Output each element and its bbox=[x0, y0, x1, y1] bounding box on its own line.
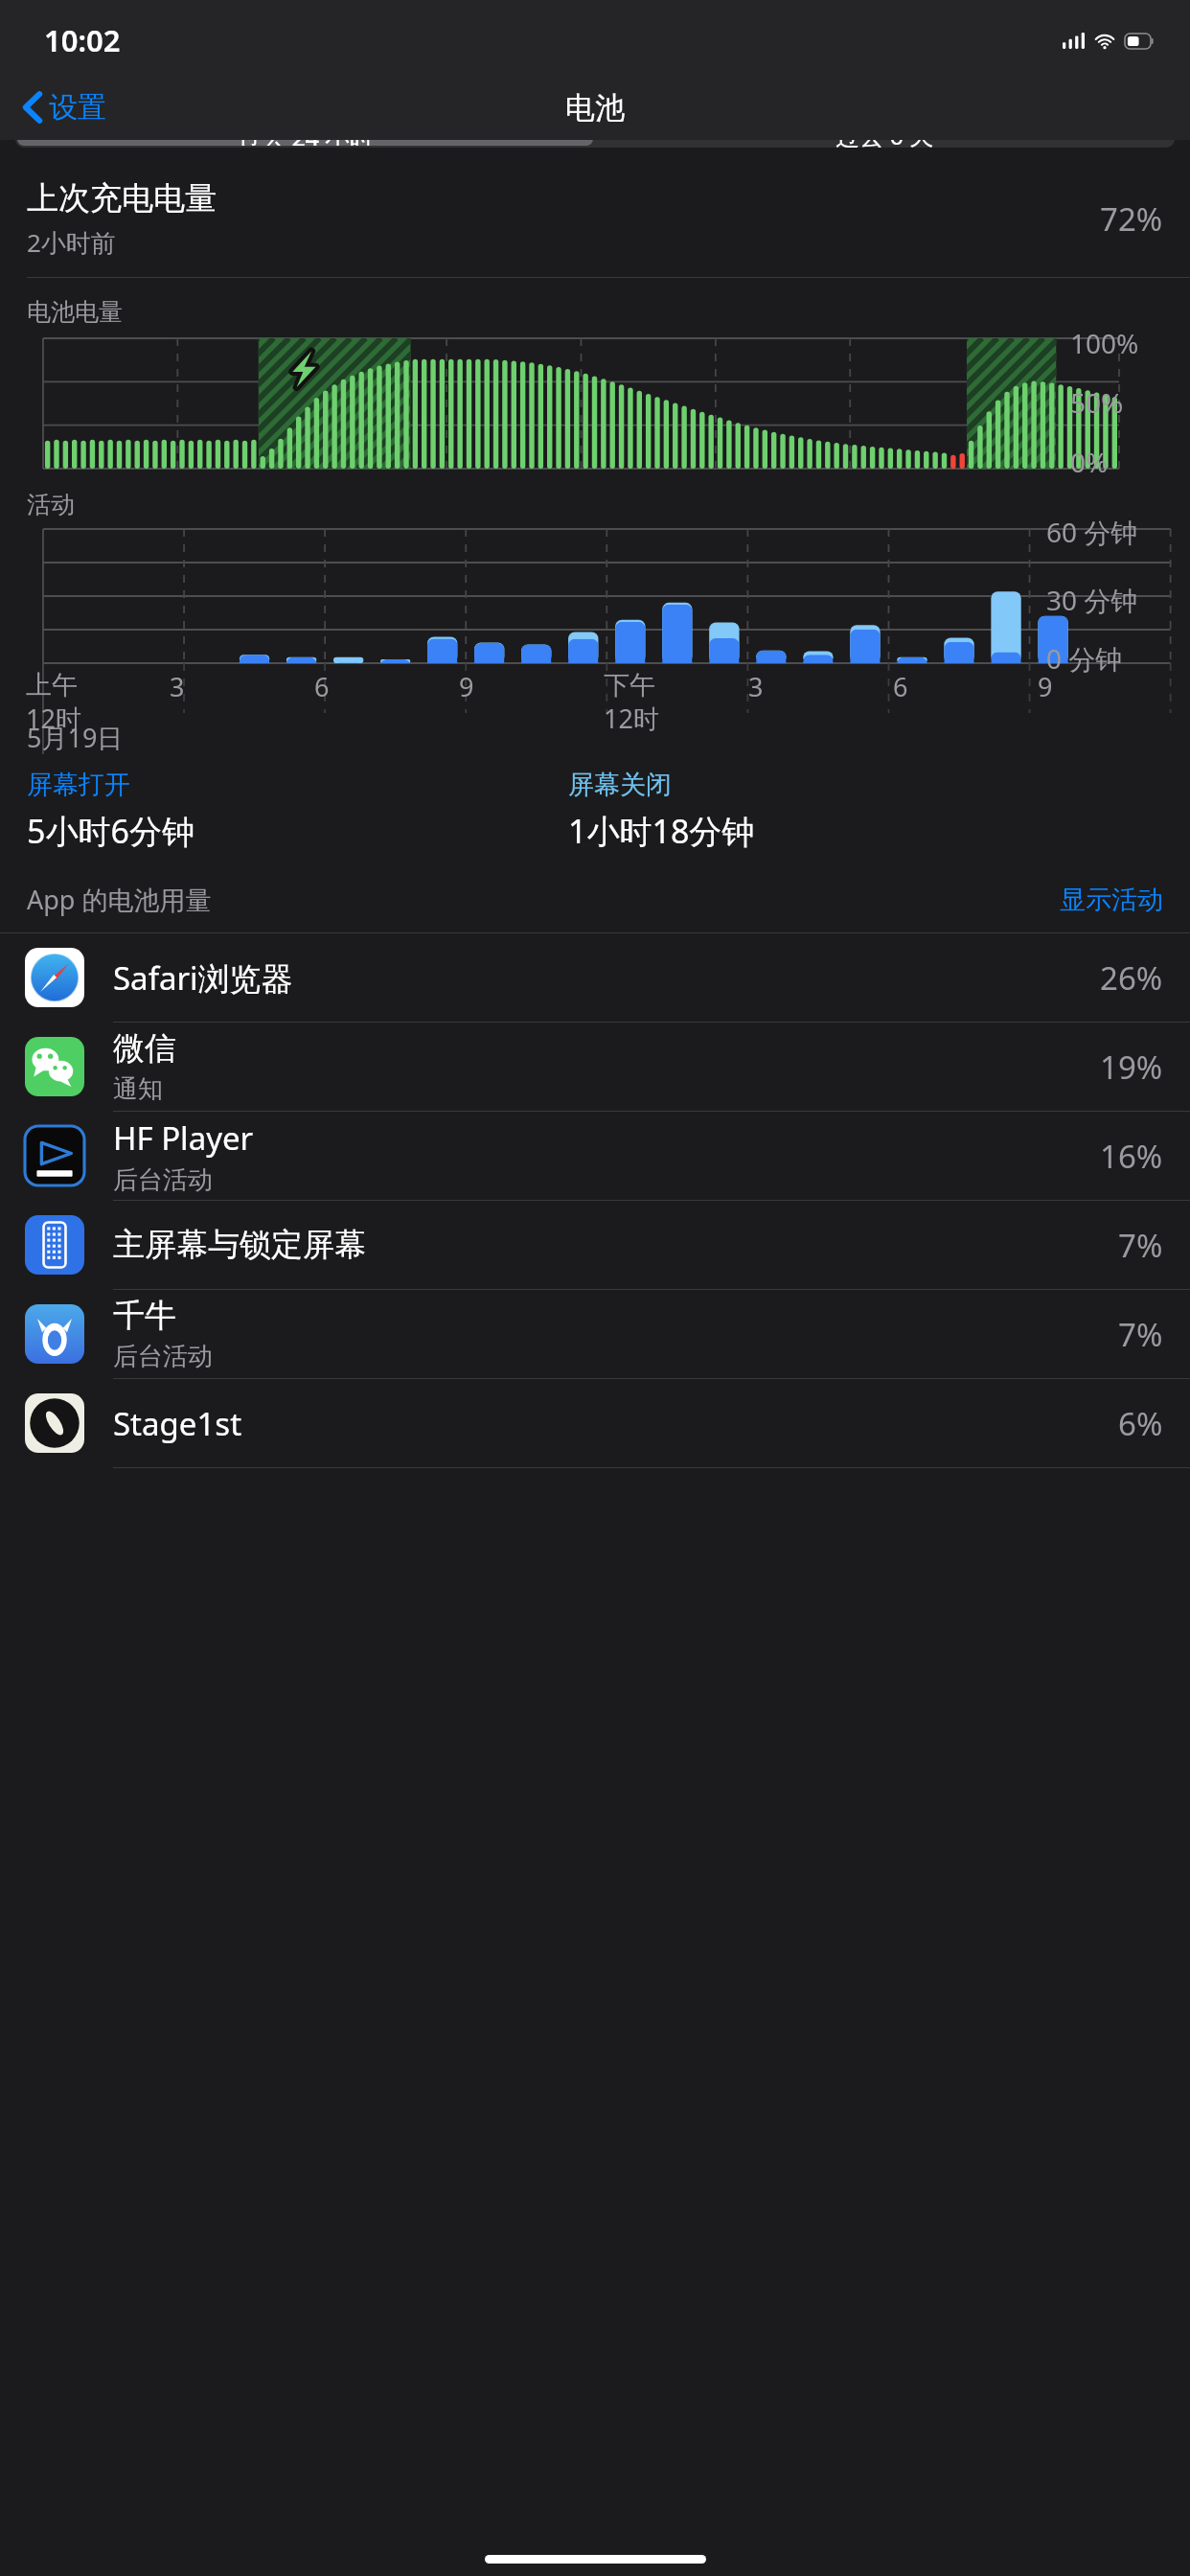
staticText: 10:02 bbox=[44, 20, 121, 60]
staticText: App 的电池用量 bbox=[27, 882, 1060, 917]
staticText: 6 bbox=[314, 669, 330, 704]
staticText: 72% bbox=[1100, 197, 1163, 241]
button[interactable]: 显示活动 bbox=[1060, 884, 1163, 916]
button[interactable]: 屏幕关闭 bbox=[568, 769, 1190, 853]
staticText: 50% bbox=[1070, 384, 1124, 421]
button[interactable]: 主屏幕与锁定屏幕 bbox=[0, 1201, 1190, 1290]
staticText: 屏幕关闭 bbox=[568, 769, 672, 801]
staticText: 显示活动 bbox=[1060, 884, 1163, 916]
button[interactable]: 设置 bbox=[15, 81, 114, 133]
staticText: 100% bbox=[1070, 325, 1139, 361]
button[interactable]: 屏幕打开 bbox=[27, 769, 568, 853]
staticText: 60 分钟 bbox=[1046, 514, 1138, 550]
staticText: 26% bbox=[1100, 956, 1163, 1000]
button[interactable]: 过去 6 天 bbox=[595, 140, 1175, 148]
staticText: Stage1st bbox=[113, 1402, 242, 1445]
staticText: 后台活动 bbox=[113, 1164, 213, 1196]
staticText: Safari浏览器 bbox=[113, 956, 293, 1000]
staticText: 上次充电电量 bbox=[27, 178, 217, 218]
staticText: 电池电量 bbox=[27, 297, 123, 327]
staticText: 9 bbox=[459, 669, 474, 704]
staticText: 19% bbox=[1100, 1046, 1163, 1089]
staticText: 5小时6分钟 bbox=[27, 809, 195, 853]
staticText: 6 bbox=[893, 669, 908, 704]
staticText: 30 分钟 bbox=[1046, 582, 1138, 618]
staticText: 屏幕打开 bbox=[27, 769, 130, 801]
staticText: 千牛 bbox=[113, 1296, 176, 1336]
staticText: 电池 bbox=[565, 89, 625, 126]
button[interactable]: Stage1st bbox=[0, 1379, 1190, 1468]
button[interactable]: 过去 24 小时 bbox=[17, 140, 593, 146]
staticText: 通知 bbox=[113, 1073, 163, 1105]
staticText: HF Player bbox=[113, 1116, 254, 1160]
staticText: 7% bbox=[1118, 1224, 1163, 1267]
staticText: 后台活动 bbox=[113, 1341, 213, 1372]
staticText: 上午 12时 bbox=[26, 669, 81, 736]
staticText: 过去 6 天 bbox=[835, 140, 934, 148]
button[interactable]: 微信 bbox=[0, 1023, 1190, 1112]
staticText: 微信 bbox=[113, 1028, 176, 1069]
staticText: 设置 bbox=[49, 89, 106, 126]
staticText: 活动 bbox=[27, 490, 75, 519]
staticText: 0% bbox=[1070, 444, 1109, 480]
staticText: 3 bbox=[170, 669, 185, 704]
staticText: 5月19日 bbox=[27, 720, 124, 755]
staticText: 下午 12时 bbox=[604, 669, 659, 736]
button[interactable]: 千牛 bbox=[0, 1290, 1190, 1379]
button[interactable]: HF Player bbox=[0, 1112, 1190, 1201]
staticText: 2小时前 bbox=[27, 225, 116, 260]
staticText: 过去 24 小时 bbox=[238, 140, 374, 146]
staticText: 1小时18分钟 bbox=[568, 809, 755, 853]
staticText: 16% bbox=[1100, 1135, 1163, 1178]
staticText: 6% bbox=[1118, 1402, 1163, 1445]
staticText: 9 bbox=[1038, 669, 1053, 704]
staticText: 7% bbox=[1118, 1313, 1163, 1356]
staticText: 主屏幕与锁定屏幕 bbox=[113, 1225, 366, 1265]
button[interactable]: Safari浏览器 bbox=[0, 933, 1190, 1023]
staticText: 3 bbox=[748, 669, 764, 704]
staticText: 0 分钟 bbox=[1046, 640, 1123, 677]
